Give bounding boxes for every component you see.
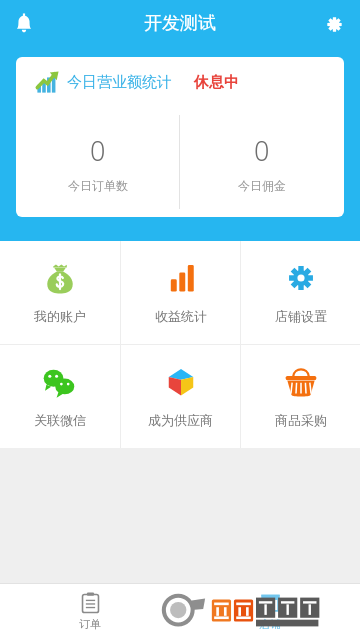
staticText: 今日订单数 (68, 178, 128, 193)
staticText: 订单 (79, 617, 101, 631)
button[interactable]: 关联微信 (0, 345, 120, 448)
staticText: 成为供应商 (148, 412, 213, 428)
button[interactable]: Settings (314, 4, 354, 44)
staticText: 休息中 (194, 73, 239, 92)
button[interactable]: 店铺设置 (241, 241, 360, 344)
staticText: 商品采购 (275, 412, 327, 428)
staticText: 0 (254, 132, 270, 169)
staticText: 0 (90, 132, 106, 169)
staticText: 今日营业额统计 (67, 73, 172, 92)
button[interactable]: 订单 (0, 583, 180, 640)
button[interactable]: 0 (16, 107, 179, 217)
staticText: 我的账户 (34, 308, 86, 324)
staticText: 店铺设置 (275, 308, 327, 324)
button[interactable]: 商品采购 (241, 345, 360, 448)
button[interactable]: 收益统计 (121, 241, 240, 344)
staticText: 今日佣金 (238, 178, 286, 193)
staticText: 开发测试 (144, 12, 216, 35)
button[interactable]: 店铺 (180, 583, 360, 640)
button[interactable]: 成为供应商 (121, 345, 240, 448)
button[interactable]: 0 (180, 107, 344, 217)
button[interactable]: Notifications (4, 4, 44, 44)
button[interactable]: 我的账户 (0, 241, 120, 344)
staticText: 关联微信 (34, 412, 86, 428)
staticText: 收益统计 (155, 308, 207, 324)
staticText: 店铺 (259, 617, 281, 631)
